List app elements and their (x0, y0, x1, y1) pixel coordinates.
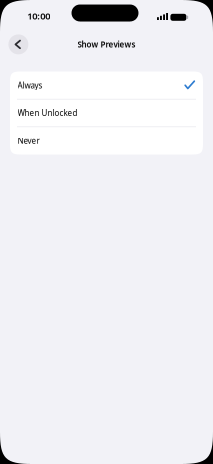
staticText: Always (17, 80, 42, 91)
button[interactable]: Never (10, 127, 203, 154)
button[interactable]: When Unlocked (10, 99, 203, 127)
staticText: Never (17, 135, 39, 146)
staticText: 10:00 (27, 10, 50, 22)
staticText: When Unlocked (17, 108, 77, 118)
button[interactable]: Always (10, 71, 203, 99)
staticText: Show Previews (77, 39, 135, 50)
button[interactable]: Back (8, 34, 28, 54)
